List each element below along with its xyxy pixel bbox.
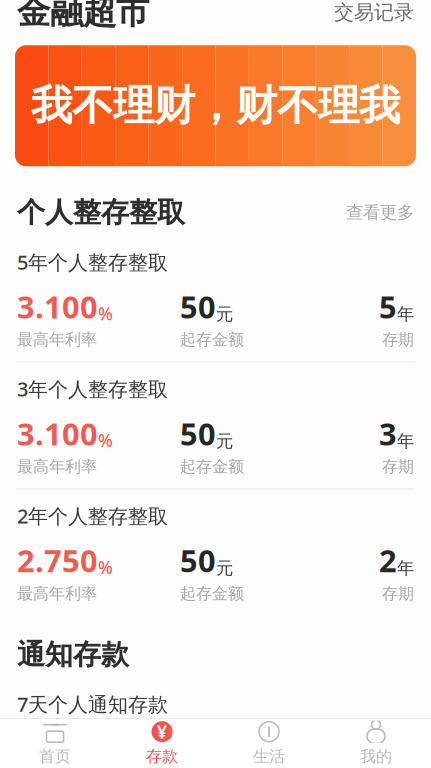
staticText: ¥: [157, 720, 167, 743]
button[interactable]: 3年个人整存整取: [0, 363, 431, 488]
staticText: 2年个人整存整取: [17, 502, 168, 529]
staticText: 个人整存整取: [17, 195, 185, 230]
staticText: 3.100: [17, 286, 98, 327]
button[interactable]: 我的: [322, 718, 429, 768]
staticText: 起存金额: [180, 457, 244, 476]
staticText: 交易记录: [334, 0, 414, 25]
staticText: 2.750: [17, 540, 98, 581]
staticText: 50: [180, 286, 216, 327]
staticText: 通知存款: [17, 637, 129, 672]
button[interactable]: ¥: [108, 718, 215, 768]
staticText: 5: [379, 286, 397, 327]
button[interactable]: 生活: [215, 718, 322, 768]
staticText: 生活: [253, 747, 285, 766]
staticText: 最高年利率: [17, 330, 97, 350]
button[interactable]: 我不理财，财不理我: [15, 45, 416, 166]
staticText: 3: [379, 413, 397, 454]
staticText: 元: [216, 431, 233, 452]
staticText: 年: [397, 557, 414, 579]
staticText: 2: [379, 540, 397, 581]
staticText: 查看更多: [346, 202, 414, 223]
button[interactable]: 7天个人通知存款: [0, 678, 431, 768]
staticText: 元: [216, 557, 233, 579]
staticText: 1.200: [17, 728, 98, 768]
staticText: 起存金额: [180, 584, 244, 603]
staticText: %: [98, 302, 113, 325]
staticText: 我的: [360, 747, 392, 766]
staticText: 最高年利率: [17, 584, 97, 603]
staticText: 最高年利率: [17, 457, 97, 476]
staticText: 首页: [39, 747, 71, 766]
staticText: %: [98, 429, 113, 452]
button[interactable]: 查看更多: [346, 202, 414, 223]
button[interactable]: 交易记录: [334, 0, 414, 25]
button[interactable]: 2年个人整存整取: [0, 489, 431, 615]
staticText: 3.100: [17, 413, 98, 454]
staticText: 金融超市: [17, 0, 149, 33]
staticText: 起存金额: [180, 330, 244, 350]
staticText: 年: [397, 431, 414, 452]
staticText: 7: [379, 728, 397, 768]
staticText: 5年个人整存整取: [17, 249, 168, 275]
staticText: %: [98, 556, 113, 579]
staticText: 50: [180, 413, 216, 454]
staticText: 7天个人通知存款: [17, 691, 168, 717]
staticText: 存款: [146, 747, 178, 766]
staticText: 元: [216, 304, 233, 325]
staticText: 50: [180, 540, 216, 581]
staticText: 3年个人整存整取: [17, 376, 168, 402]
button[interactable]: 首页: [1, 718, 108, 768]
staticText: 我不理财，财不理我: [31, 80, 400, 131]
staticText: 存期: [382, 584, 414, 603]
button[interactable]: 5年个人整存整取: [0, 236, 431, 361]
staticText: 年: [397, 304, 414, 325]
staticText: 存期: [382, 330, 414, 350]
staticText: 存期: [382, 457, 414, 476]
